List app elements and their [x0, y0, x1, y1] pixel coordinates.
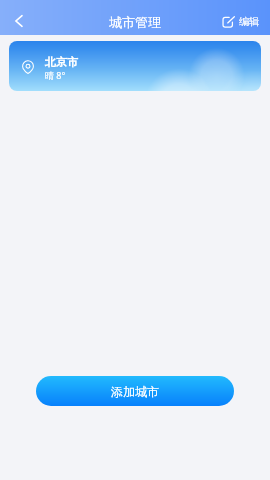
staticText: 编辑: [239, 15, 259, 28]
button[interactable]: 北京市: [9, 41, 261, 91]
button[interactable]: 编辑: [216, 8, 270, 35]
staticText: 北京市: [45, 55, 78, 69]
button[interactable]: Back: [0, 8, 38, 35]
staticText: 添加城市: [111, 384, 159, 399]
staticText: 晴 8°: [45, 69, 66, 81]
button[interactable]: 添加城市: [36, 376, 234, 406]
staticText: 城市管理: [109, 14, 161, 30]
